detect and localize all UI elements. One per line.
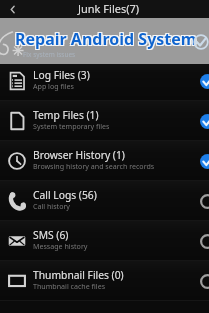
staticText: Thumbnail cache files — [33, 281, 106, 291]
button[interactable]: Browser History (1) — [0, 141, 209, 181]
staticText: Call history — [33, 201, 70, 211]
button[interactable]: Temp Files (1) — [0, 101, 209, 141]
staticText: Repair Android System — [14, 27, 196, 49]
staticText: Fix system issues — [23, 50, 76, 59]
staticText: Temp Files (1) — [33, 108, 99, 122]
staticText: Repair Android System — [15, 28, 197, 50]
staticText: App log files — [33, 81, 74, 91]
staticText: Repair Android System — [16, 27, 198, 49]
button[interactable]: SMS (6) — [0, 221, 209, 261]
staticText: Message history — [33, 241, 88, 251]
staticText: System temporary files — [33, 121, 110, 131]
button[interactable]: Thumbnail Files (0) — [0, 261, 209, 301]
staticText: Call Logs (56) — [33, 188, 97, 202]
staticText: Browsing history and search records — [33, 161, 155, 171]
staticText: Browser History (1) — [33, 148, 125, 162]
button[interactable]: Back — [0, 0, 24, 18]
button[interactable]: Call Logs (56) — [0, 181, 209, 221]
staticText: Thumbnail Files (0) — [33, 268, 124, 282]
button[interactable]: Repair Android System — [0, 18, 209, 64]
staticText: Log Files (3) — [33, 68, 90, 82]
staticText: SMS (6) — [33, 228, 69, 242]
staticText: Repair Android System — [16, 29, 198, 51]
staticText: Junk Files(7) — [78, 1, 140, 16]
button[interactable]: Log Files (3) — [0, 61, 209, 101]
staticText: Repair Android System — [14, 29, 196, 51]
